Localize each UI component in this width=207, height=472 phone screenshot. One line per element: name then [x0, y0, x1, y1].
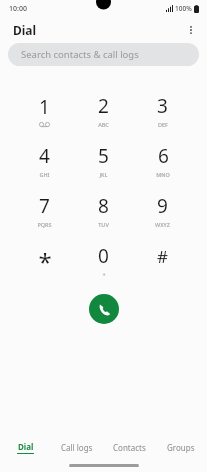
- staticText: 2: [98, 93, 109, 119]
- staticText: 1: [39, 94, 50, 120]
- button[interactable]: 3: [133, 85, 192, 135]
- button[interactable]: More options: [181, 20, 201, 40]
- button[interactable]: Call: [89, 294, 119, 324]
- staticText: 0: [98, 243, 109, 269]
- staticText: DEF: [158, 121, 168, 128]
- button[interactable]: Groups: [155, 435, 207, 459]
- button[interactable]: 7: [15, 185, 74, 235]
- button[interactable]: *: [15, 235, 74, 285]
- staticText: Contacts: [113, 442, 146, 453]
- staticText: WXYZ: [155, 221, 170, 228]
- staticText: JKL: [99, 171, 108, 178]
- staticText: 4: [39, 143, 50, 169]
- button[interactable]: 5: [74, 135, 133, 185]
- staticText: *: [38, 245, 52, 267]
- staticText: 6: [158, 143, 169, 169]
- staticText: Call logs: [61, 442, 93, 453]
- staticText: 10:00: [9, 4, 27, 14]
- staticText: 5: [98, 143, 109, 169]
- button[interactable]: Call logs: [51, 435, 103, 459]
- button[interactable]: 9: [133, 185, 192, 235]
- staticText: ABC: [98, 121, 109, 128]
- staticText: Search contacts & call logs: [21, 48, 139, 61]
- staticText: Groups: [167, 442, 195, 453]
- button[interactable]: Dial: [0, 435, 51, 459]
- staticText: 7: [39, 193, 50, 219]
- staticText: TUV: [98, 221, 109, 228]
- staticText: +: [102, 271, 106, 278]
- button[interactable]: 8: [74, 185, 133, 235]
- staticText: 3: [157, 93, 168, 119]
- button[interactable]: 1: [15, 85, 74, 135]
- staticText: #: [157, 245, 168, 267]
- staticText: 100%: [175, 4, 192, 13]
- staticText: 9: [157, 193, 168, 219]
- staticText: 8: [98, 193, 109, 219]
- button[interactable]: Search contacts & call logs: [8, 43, 199, 66]
- staticText: MNO: [156, 171, 170, 178]
- staticText: GHI: [39, 171, 50, 178]
- button[interactable]: 2: [74, 85, 133, 135]
- staticText: Dial: [18, 441, 34, 452]
- button[interactable]: #: [133, 235, 192, 285]
- button[interactable]: Contacts: [103, 435, 155, 459]
- button[interactable]: 6: [133, 135, 192, 185]
- button[interactable]: 4: [15, 135, 74, 185]
- staticText: Dial: [13, 22, 37, 38]
- button[interactable]: 0: [74, 235, 133, 285]
- staticText: PQRS: [37, 221, 52, 228]
